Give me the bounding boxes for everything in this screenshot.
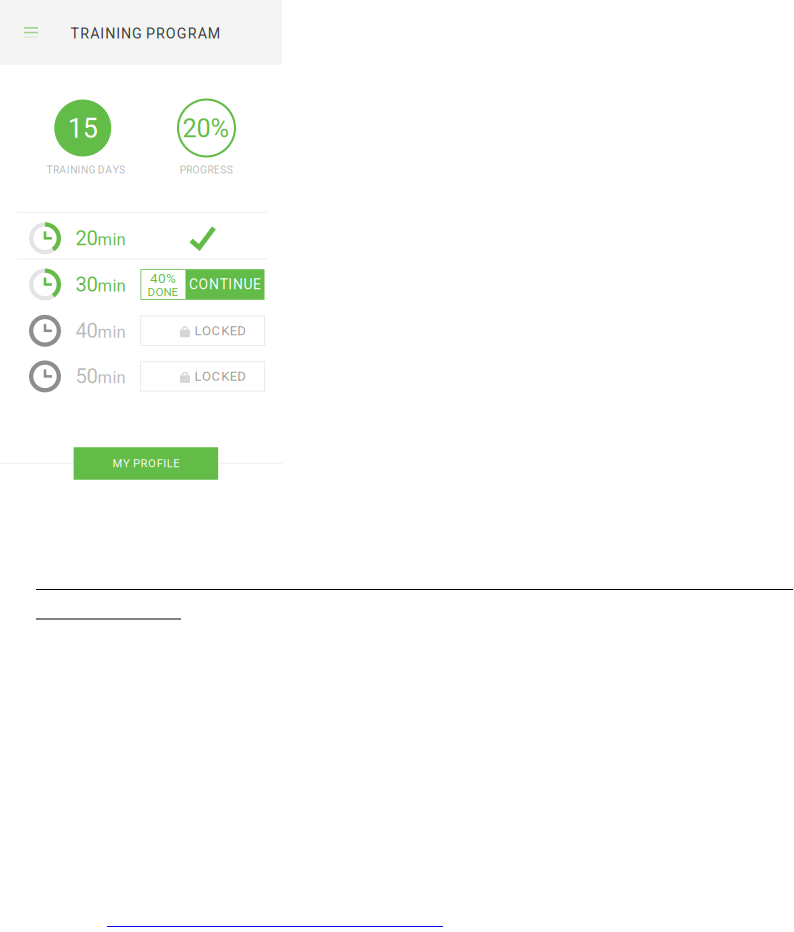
staticText: O: [148, 457, 156, 470]
staticText: N: [70, 164, 77, 176]
staticText: T: [70, 25, 79, 42]
staticText: T: [220, 276, 228, 293]
staticText: 15: [68, 113, 98, 144]
staticText: A: [59, 164, 66, 176]
staticText: N: [121, 25, 131, 42]
staticText: 20: [75, 226, 97, 250]
staticText: min: [97, 368, 125, 387]
staticText: R: [186, 164, 192, 176]
staticText: E: [173, 457, 179, 470]
button[interactable]: 40%: [140, 269, 264, 300]
staticText: C: [189, 276, 198, 293]
button[interactable]: L: [140, 316, 264, 346]
staticText: Y: [113, 164, 119, 176]
staticText: 30: [75, 273, 97, 296]
staticText: E: [230, 323, 237, 338]
staticText: O: [166, 25, 176, 42]
staticText: A: [105, 164, 112, 176]
staticText: R: [53, 164, 59, 176]
staticText: K: [221, 323, 229, 338]
staticText: S: [227, 164, 233, 176]
staticText: G: [88, 164, 95, 176]
staticText: R: [140, 457, 147, 470]
staticText: O: [193, 164, 200, 176]
staticText: min: [97, 276, 125, 295]
staticText: I: [228, 276, 232, 293]
staticText: DONE: [147, 285, 178, 299]
staticText: 40%: [150, 270, 176, 286]
staticText: O: [202, 369, 211, 384]
staticText: E: [214, 164, 220, 176]
staticText: 40: [75, 319, 97, 343]
staticText: K: [221, 369, 229, 384]
staticText: min: [97, 230, 125, 249]
staticText: C: [212, 369, 221, 384]
staticText: S: [220, 164, 226, 176]
staticText: O: [202, 323, 211, 338]
staticText: N: [105, 25, 115, 42]
staticText: 50: [75, 364, 97, 388]
staticText: L: [194, 323, 201, 338]
button[interactable]: M: [74, 447, 218, 480]
staticText: G: [200, 164, 207, 176]
staticText: E: [253, 276, 261, 293]
staticText: Y: [123, 457, 130, 470]
staticText: N: [233, 276, 243, 293]
staticText: G: [132, 25, 142, 42]
staticText: G: [177, 25, 187, 42]
staticText: P: [133, 457, 140, 470]
staticText: F: [157, 457, 163, 470]
staticText: R: [207, 164, 213, 176]
staticText: 20%: [182, 114, 229, 143]
staticText: I: [116, 25, 120, 42]
staticText: min: [97, 322, 125, 342]
staticText: C: [212, 323, 221, 338]
staticText: L: [167, 457, 173, 470]
staticText: L: [194, 369, 201, 384]
staticText: S: [119, 164, 125, 176]
staticText: I: [163, 457, 166, 470]
staticText: I: [67, 164, 70, 176]
staticText: M: [208, 25, 220, 42]
staticText: P: [146, 25, 155, 42]
staticText: M: [112, 457, 122, 470]
staticText: N: [209, 276, 219, 293]
staticText: I: [100, 25, 104, 42]
staticText: N: [81, 164, 88, 176]
staticText: D: [98, 164, 105, 176]
staticText: D: [237, 323, 246, 338]
button[interactable]: Open menu: [14, 15, 48, 49]
staticText: O: [198, 276, 208, 293]
staticText: T: [46, 164, 52, 176]
staticText: A: [198, 25, 207, 42]
staticText: U: [243, 276, 252, 293]
staticText: I: [78, 164, 81, 176]
staticText: R: [188, 25, 197, 42]
button[interactable]: L: [140, 362, 264, 391]
staticText: E: [230, 369, 237, 384]
staticText: R: [156, 25, 165, 42]
staticText: R: [80, 25, 89, 42]
staticText: P: [180, 164, 186, 176]
staticText: D: [237, 369, 246, 384]
staticText: A: [90, 25, 99, 42]
